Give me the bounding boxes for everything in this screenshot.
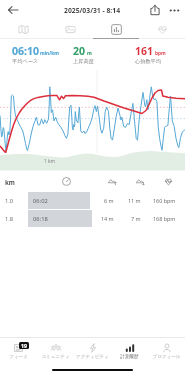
staticText: 06:10	[12, 44, 39, 58]
button[interactable]: Back	[2, 0, 23, 20]
staticText: 心拍数平均	[135, 58, 161, 65]
button[interactable]: コミュニティ	[37, 337, 74, 363]
staticText: フィード	[9, 354, 28, 360]
staticText: 161	[135, 44, 154, 58]
button[interactable]: プロフィール	[148, 337, 185, 363]
button[interactable]: アクティビティ	[74, 337, 111, 363]
staticText: 1.8	[5, 215, 14, 223]
staticText: 6 m	[104, 197, 114, 204]
staticText: 上昇高度	[73, 58, 94, 65]
button[interactable]: More options	[164, 0, 184, 20]
button[interactable]: Heart rate	[139, 20, 185, 39]
staticText: 2025/03/31 - 8:14	[64, 6, 121, 15]
staticText: 19	[21, 342, 27, 349]
button[interactable]: Map	[0, 20, 47, 39]
staticText: 20	[73, 44, 86, 58]
staticText: 1.0	[5, 197, 14, 205]
staticText: プロフィール	[152, 354, 181, 360]
staticText: 168 bpm	[153, 215, 176, 222]
staticText: アクティビティ	[76, 354, 109, 360]
staticText: m	[87, 50, 92, 57]
staticText: min/km	[40, 50, 59, 57]
button[interactable]: Share	[145, 0, 165, 20]
staticText: 1 km	[44, 158, 56, 165]
staticText: コミュニティ	[41, 354, 70, 360]
button[interactable]: Photos	[47, 20, 93, 39]
staticText: 14 m	[101, 215, 114, 222]
staticText: bpm	[155, 50, 166, 57]
button[interactable]: Charts	[93, 20, 139, 39]
staticText: 平均ペース	[12, 58, 39, 65]
staticText: 06:18	[33, 215, 48, 223]
button[interactable]: 計測履歴	[111, 337, 148, 363]
button[interactable]: 19	[0, 337, 37, 363]
staticText: 計測履歴	[120, 354, 139, 360]
staticText: km	[5, 178, 15, 186]
staticText: 160 bpm	[153, 197, 176, 204]
button[interactable]: 1.0	[0, 192, 185, 209]
staticText: 7 m	[131, 215, 141, 222]
staticText: 06:02	[33, 197, 48, 205]
staticText: 11 m	[128, 197, 141, 204]
button[interactable]: 1.8	[0, 210, 185, 227]
